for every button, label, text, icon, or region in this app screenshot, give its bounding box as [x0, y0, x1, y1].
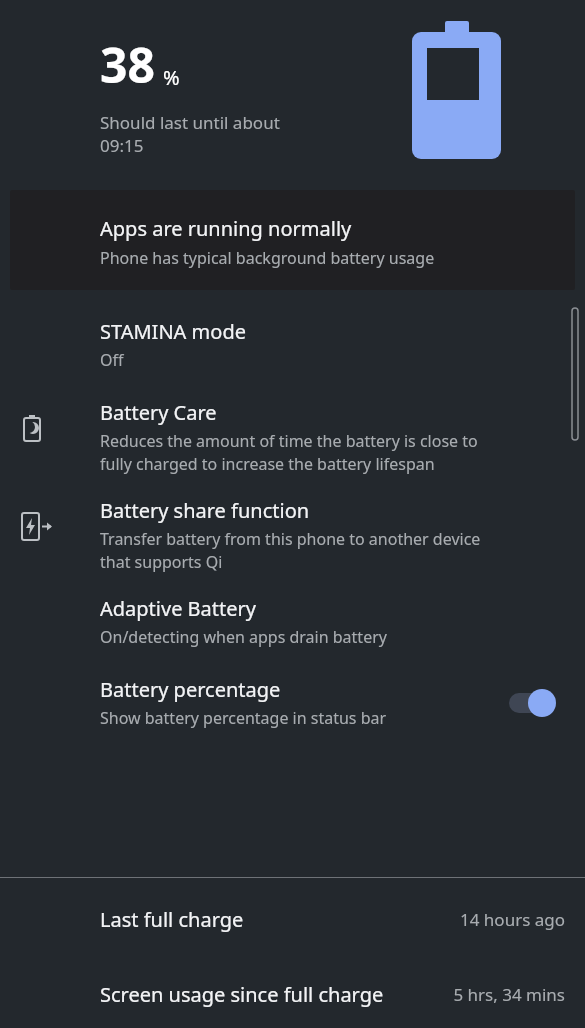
- staticText: STAMINA mode: [100, 318, 246, 345]
- button[interactable]: Battery percentage toggle: [509, 686, 563, 720]
- staticText: %: [163, 64, 180, 91]
- staticText: Apps are running normally: [100, 215, 352, 242]
- staticText: Transfer battery from this phone to anot…: [100, 528, 481, 573]
- staticText: 38: [100, 32, 155, 97]
- staticText: Show battery percentage in status bar: [100, 707, 387, 729]
- staticText: 5 hrs, 34 mins: [453, 983, 565, 1006]
- staticText: Reduces the amount of time the battery i…: [100, 430, 478, 475]
- staticText: Off: [100, 349, 124, 371]
- button[interactable]: Battery percentage: [0, 676, 585, 729]
- button[interactable]: Apps are running normally: [10, 190, 575, 290]
- button[interactable]: Battery Care: [0, 399, 585, 475]
- staticText: Adaptive Battery: [100, 595, 257, 622]
- staticText: 14 hours ago: [459, 908, 565, 931]
- staticText: On/detecting when apps drain battery: [100, 626, 387, 648]
- button[interactable]: STAMINA mode: [0, 318, 585, 371]
- staticText: Battery share function: [100, 497, 310, 524]
- button[interactable]: Battery share function: [0, 497, 585, 573]
- button[interactable]: Adaptive Battery: [0, 595, 585, 648]
- staticText: Battery Care: [100, 399, 217, 426]
- staticText: Last full charge: [100, 906, 244, 933]
- staticText: Phone has typical background battery usa…: [100, 247, 435, 269]
- button[interactable]: Last full charge: [0, 906, 585, 933]
- button[interactable]: Screen usage since full charge: [0, 981, 585, 1008]
- staticText: Should last until about 09:15: [100, 111, 280, 157]
- staticText: Screen usage since full charge: [100, 981, 384, 1008]
- staticText: Battery percentage: [100, 676, 281, 703]
